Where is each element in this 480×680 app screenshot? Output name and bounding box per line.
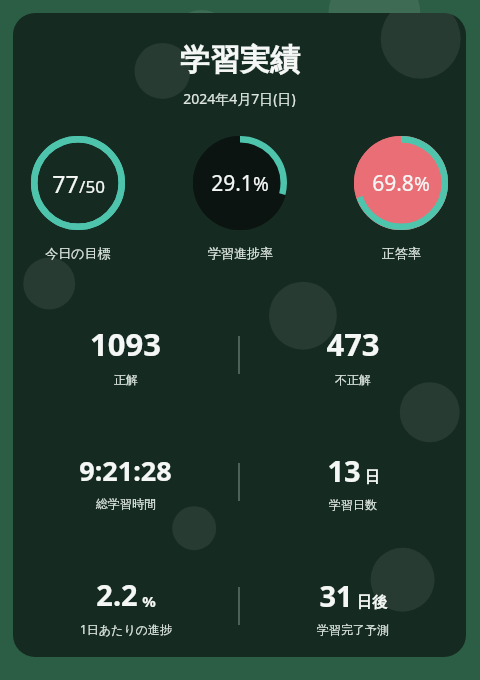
staticText: 473 (326, 323, 380, 365)
button[interactable]: 77 (31, 136, 125, 261)
staticText: 31 (319, 576, 353, 615)
staticText: /50 (79, 175, 105, 198)
staticText: 日 (365, 468, 380, 487)
staticText: 29.1 (211, 169, 253, 198)
staticText: % (142, 591, 156, 611)
staticText: 学習進捗率 (208, 245, 273, 261)
staticText: 正解 (114, 372, 138, 387)
staticText: 学習完了予測 (317, 622, 389, 637)
staticText: 2.2 (96, 575, 138, 614)
staticText: % (414, 171, 430, 197)
staticText: 日後 (357, 593, 387, 612)
staticText: 69.8 (372, 169, 414, 198)
staticText: 総学習時間 (96, 496, 156, 511)
staticText: 不正解 (335, 372, 371, 387)
button[interactable]: 29.1 (193, 136, 287, 261)
staticText: 正答率 (382, 245, 421, 261)
staticText: 77 (52, 168, 79, 199)
button[interactable]: 473 (240, 323, 466, 387)
staticText: 学習日数 (329, 497, 377, 512)
staticText: % (253, 171, 269, 197)
button[interactable]: 2.2 (13, 575, 238, 637)
button[interactable]: 1093 (13, 323, 238, 387)
staticText: 13 (327, 451, 361, 490)
staticText: 9:21:28 (79, 452, 172, 489)
button[interactable]: 69.8 (354, 136, 448, 261)
staticText: 2024年4月7日(日) (183, 89, 296, 108)
staticText: 1日あたりの進捗 (80, 621, 172, 637)
staticText: 学習実績 (180, 41, 300, 79)
button[interactable]: 13 (240, 451, 466, 512)
staticText: 今日の目標 (45, 245, 111, 261)
button[interactable]: 9:21:28 (13, 452, 238, 511)
button[interactable]: 31 (240, 576, 466, 637)
staticText: 1093 (90, 323, 161, 365)
